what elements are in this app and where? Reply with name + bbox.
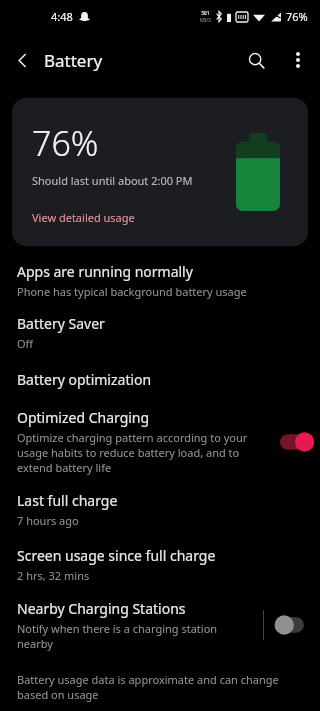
staticText: Optimize charging pattern according to y… [17,430,270,475]
staticText: Off [17,336,34,351]
staticText: 2 hrs, 32 mins [17,568,90,583]
staticText: 76% [286,9,308,24]
staticText: Optimized Charging [17,408,150,427]
staticText: Should last until about 2:00 PM [32,173,193,188]
button[interactable]: More options [278,40,318,80]
button[interactable]: Search [234,38,278,82]
button[interactable]: Apps are running normally [0,262,320,299]
button[interactable]: Optimized Charging [0,408,320,475]
staticText: 301 [201,10,210,17]
staticText: Apps are running normally [17,262,193,281]
button[interactable]: View detailed usage [32,210,135,225]
staticText: Nearby Charging Stations [17,599,186,618]
staticText: Battery [44,49,103,72]
staticText: Battery Saver [17,314,105,333]
staticText: Screen usage since full charge [17,546,216,565]
staticText: 7 hours ago [17,513,79,528]
staticText: 4:48 [51,9,73,24]
button[interactable]: Nearby Charging Stations [276,610,310,640]
staticText: Last full charge [17,491,118,510]
staticText: Battery usage data is approximate and ca… [17,672,303,702]
staticText: Notify when there is a charging station … [17,621,253,651]
button[interactable]: Battery optimization [0,370,320,389]
button[interactable]: Optimized Charging [280,427,320,457]
staticText: Battery optimization [17,370,152,389]
button[interactable]: Screen usage since full charge [0,546,320,583]
staticText: KB/S [200,17,211,24]
button[interactable]: Back [0,38,44,82]
button[interactable]: Nearby Charging Stations [0,599,320,651]
button[interactable]: Last full charge [0,491,320,528]
button[interactable]: Battery Saver [0,314,320,351]
staticText: 76% [32,120,99,166]
button[interactable]: 76% [12,98,308,246]
staticText: Phone has typical background battery usa… [17,284,247,299]
